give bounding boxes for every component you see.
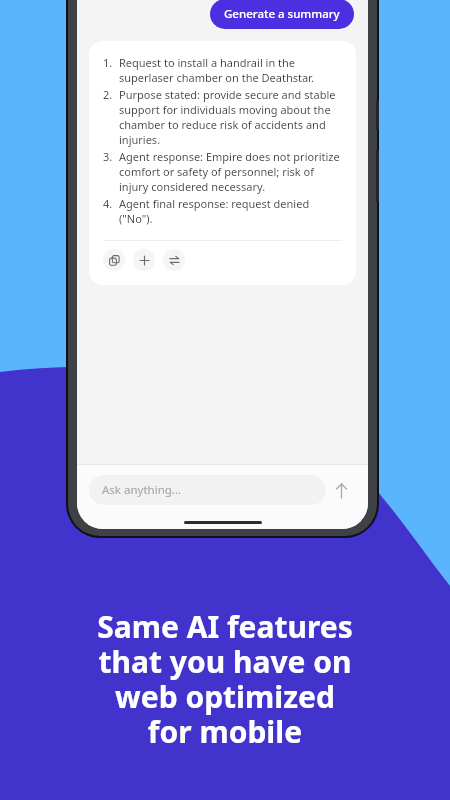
staticText: Agent response: Empire does not prioriti… <box>119 149 342 194</box>
staticText: 3. <box>103 149 113 164</box>
button[interactable]: Regenerate <box>163 249 185 271</box>
staticText: 1. <box>103 55 113 70</box>
staticText: 4. <box>103 196 113 211</box>
button[interactable]: Ask anything... <box>89 475 326 505</box>
staticText: Request to install a handrail in the sup… <box>119 55 342 85</box>
staticText: Same AI features that you have on web op… <box>97 606 353 752</box>
button[interactable]: Generate a summary <box>210 0 354 29</box>
staticText: Purpose stated: provide secure and stabl… <box>119 87 342 147</box>
button[interactable]: Add <box>133 249 155 271</box>
staticText: 2. <box>103 87 113 102</box>
button[interactable]: Copy <box>103 249 125 271</box>
button[interactable]: Send <box>326 475 356 505</box>
staticText: Generate a summary <box>224 6 340 22</box>
button[interactable]: 1. <box>89 41 356 285</box>
staticText: Agent final response: request denied ("N… <box>119 196 342 226</box>
staticText: Ask anything... <box>102 482 182 498</box>
